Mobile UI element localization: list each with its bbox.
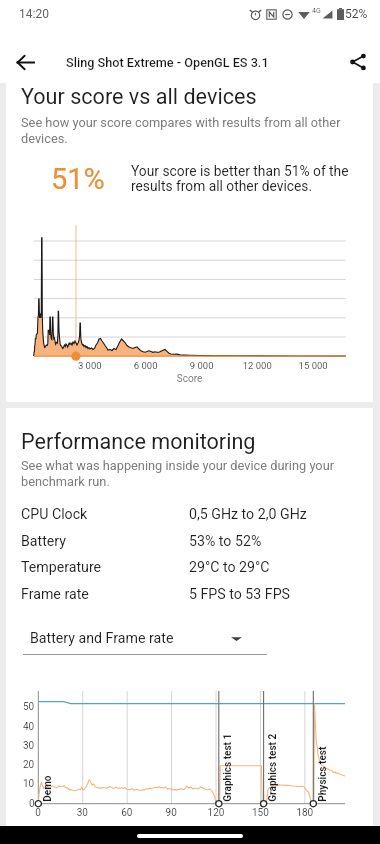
staticText: Your score vs all devices — [21, 84, 257, 109]
staticText: 29°C to 29°C — [189, 559, 270, 576]
staticText: Battery and Frame rate — [30, 630, 174, 647]
staticText: Your score is better than 51% of the res… — [131, 163, 359, 195]
staticText: Battery — [21, 533, 189, 550]
button[interactable]: Battery and Frame rate — [23, 621, 267, 655]
staticText: CPU Clock — [21, 506, 189, 523]
staticText: 51% — [51, 162, 105, 196]
staticText: See what was happening inside your devic… — [21, 458, 351, 489]
staticText: 53% to 52% — [189, 533, 262, 550]
staticText: 5 FPS to 53 FPS — [189, 586, 291, 603]
button[interactable]: Back — [5, 42, 45, 82]
staticText: 0,5 GHz to 2,0 GHz — [189, 506, 307, 523]
staticText: 4G — [312, 7, 321, 15]
staticText: Temperature — [21, 559, 189, 576]
staticText: Performance monitoring — [21, 429, 256, 454]
staticText: Frame rate — [21, 586, 189, 603]
staticText: 52% — [345, 7, 368, 21]
button[interactable]: Share — [338, 42, 378, 82]
staticText: 14:20 — [19, 7, 49, 21]
staticText: Sling Shot Extreme - OpenGL ES 3.1 — [66, 55, 269, 70]
staticText: See how your score compares with results… — [21, 115, 353, 146]
